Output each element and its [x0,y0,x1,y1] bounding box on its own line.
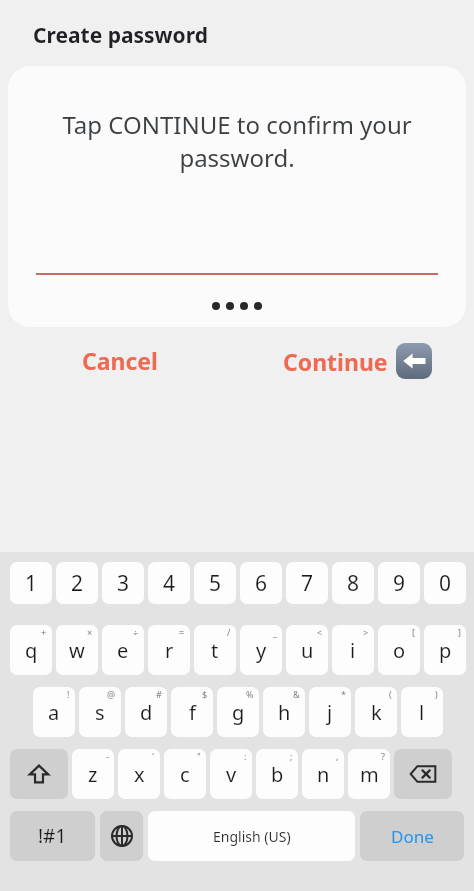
staticText: j [327,699,333,726]
button[interactable]: y [240,625,282,675]
button[interactable]: b [256,749,298,799]
button[interactable]: !#1 [10,811,95,861]
button[interactable]: m [348,749,390,799]
button[interactable]: a [33,687,75,737]
staticText: n [317,761,330,788]
staticText: 7 [301,569,314,598]
staticText: a [48,699,60,726]
button[interactable]: q [10,625,52,675]
staticText: Cancel [82,345,158,376]
button[interactable]: s [79,687,121,737]
button[interactable]: o [378,625,420,675]
button[interactable]: h [263,687,305,737]
staticText: c [180,761,190,788]
button[interactable]: Change language [100,811,143,861]
button[interactable]: Cancel [82,345,158,376]
staticText: 0 [439,569,452,598]
button[interactable]: 2 [56,562,98,604]
button[interactable]: n [302,749,344,799]
staticText: 1 [25,569,38,598]
staticText: i [350,637,356,664]
button[interactable]: 5 [194,562,236,604]
staticText: @ [107,688,116,700]
staticText: , [336,750,339,762]
staticText: ÷ [133,626,139,638]
button[interactable]: l [401,687,443,737]
button[interactable]: 8 [332,562,374,604]
button[interactable]: j [309,687,351,737]
staticText: 2 [71,569,84,598]
staticText: : [244,750,247,762]
button[interactable]: e [102,625,144,675]
staticText: y [256,637,267,664]
staticText: r [165,637,174,664]
staticText: k [371,699,382,726]
staticText: ] [458,626,461,638]
staticText: ( [389,688,392,700]
staticText: u [301,637,314,664]
button[interactable]: d [125,687,167,737]
staticText: 9 [393,569,406,598]
button[interactable]: Shift [10,749,68,799]
staticText: o [393,637,406,664]
button[interactable]: p [424,625,466,675]
button[interactable]: k [355,687,397,737]
staticText: 4 [163,569,176,598]
staticText: " [197,750,201,762]
staticText: = [179,626,185,638]
staticText: Continue [283,346,388,377]
button[interactable]: 1 [10,562,52,604]
staticText: 3 [117,569,130,598]
staticText: q [25,637,38,664]
button[interactable]: 7 [286,562,328,604]
button[interactable]: z [72,749,114,799]
staticText: t [211,637,219,664]
staticText: 6 [255,569,268,598]
staticText: Done [391,825,434,848]
button[interactable]: 0 [424,562,466,604]
staticText: !#1 [38,823,67,849]
staticText: English (US) [213,827,291,846]
button[interactable]: w [56,625,98,675]
staticText: w [69,637,85,664]
staticText: d [140,699,153,726]
button[interactable]: i [332,625,374,675]
button[interactable]: 3 [102,562,144,604]
staticText: - [106,750,109,762]
button[interactable]: c [164,749,206,799]
button[interactable]: v [210,749,252,799]
button[interactable]: 6 [240,562,282,604]
staticText: e [117,637,129,664]
staticText: Tap CONTINUE to confirm your password. [50,108,424,174]
staticText: ? [381,750,385,762]
staticText: # [156,688,162,700]
button[interactable]: 4 [148,562,190,604]
staticText: Create password [33,21,208,50]
staticText: ; [290,750,293,762]
button[interactable]: Done [360,811,464,861]
button[interactable]: Continue [283,343,432,379]
button[interactable]: x [118,749,160,799]
button[interactable]: u [286,625,328,675]
staticText: * [341,688,346,700]
staticText: m [360,761,379,788]
staticText: + [41,626,47,638]
staticText: x [134,761,145,788]
staticText: [ [412,626,415,638]
button[interactable]: t [194,625,236,675]
staticText: ! [67,688,70,700]
button[interactable]: 9 [378,562,420,604]
button[interactable]: f [171,687,213,737]
staticText: > [363,626,369,638]
staticText: & [293,688,300,700]
staticText: $ [202,688,208,700]
button[interactable]: English (US) [148,811,355,861]
button[interactable]: r [148,625,190,675]
staticText: _ [273,626,277,638]
button[interactable]: g [217,687,259,737]
button[interactable]: Backspace [394,749,452,799]
staticText: b [271,761,284,788]
staticText: 5 [209,569,222,598]
staticText: s [95,699,105,726]
staticText: z [88,761,98,788]
